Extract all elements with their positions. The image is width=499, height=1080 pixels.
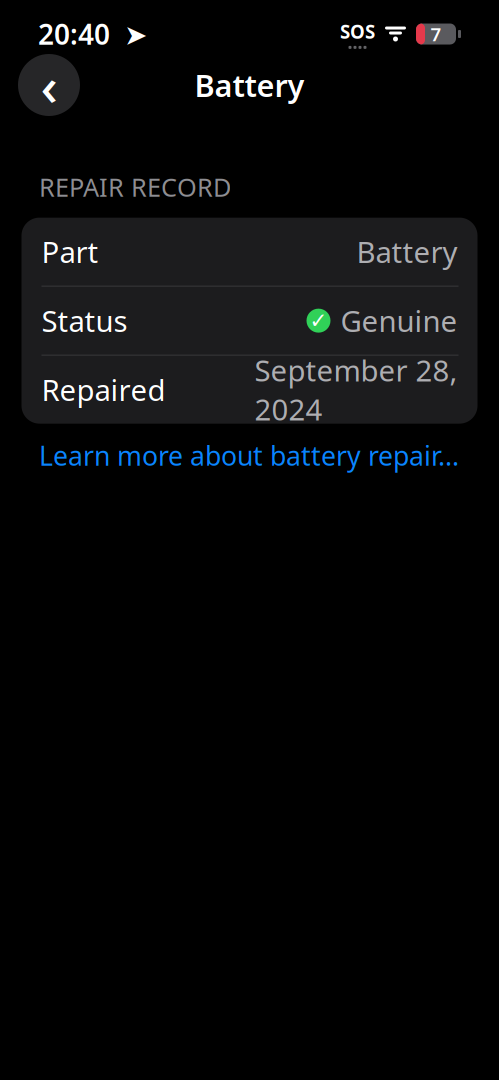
staticText: 7 [430, 22, 441, 46]
staticText: Genuine [340, 301, 457, 340]
staticText: Repaired [41, 370, 165, 409]
button[interactable]: Back [18, 54, 80, 116]
button[interactable]: Learn more about battery repair... [39, 438, 459, 473]
staticText: 20:40 ➤ [38, 15, 147, 53]
staticText: Part [41, 232, 98, 271]
staticText: Battery [194, 65, 304, 105]
staticText: SOS [340, 19, 375, 44]
staticText: ✓ [309, 308, 327, 333]
staticText: Status [41, 301, 127, 340]
staticText: September 28, 2024 [254, 351, 457, 429]
staticText: REPAIR RECORD [39, 170, 231, 204]
staticText: Learn more about battery repair... [39, 438, 459, 473]
staticText: Battery [356, 232, 457, 271]
staticText: ‹ [40, 50, 57, 120]
